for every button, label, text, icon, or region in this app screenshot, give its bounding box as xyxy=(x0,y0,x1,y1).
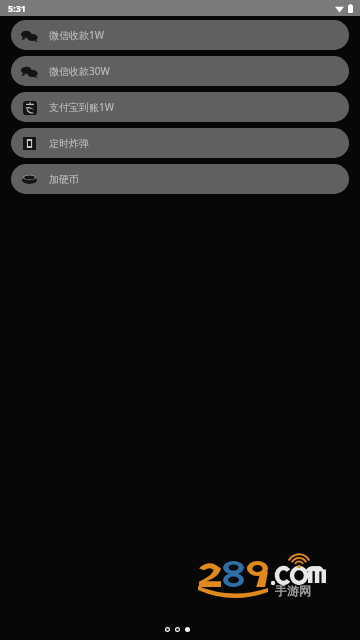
button[interactable]: 加硬币 xyxy=(11,164,349,194)
staticText: 微信收款30W xyxy=(49,64,110,78)
staticText: 5:31 xyxy=(8,2,26,14)
button[interactable]: 支付宝到账1W xyxy=(11,92,349,122)
button[interactable]: 定时炸弹 xyxy=(11,128,349,158)
button[interactable]: 微信收款30W xyxy=(11,56,349,86)
staticText: 手游网 xyxy=(275,583,311,598)
staticText: 定时炸弹 xyxy=(49,137,89,150)
staticText: 微信收款1W xyxy=(49,28,105,42)
staticText: 加硬币 xyxy=(49,173,79,186)
button[interactable]: 微信收款1W xyxy=(11,20,349,50)
staticText: 支付宝到账1W xyxy=(49,100,115,114)
